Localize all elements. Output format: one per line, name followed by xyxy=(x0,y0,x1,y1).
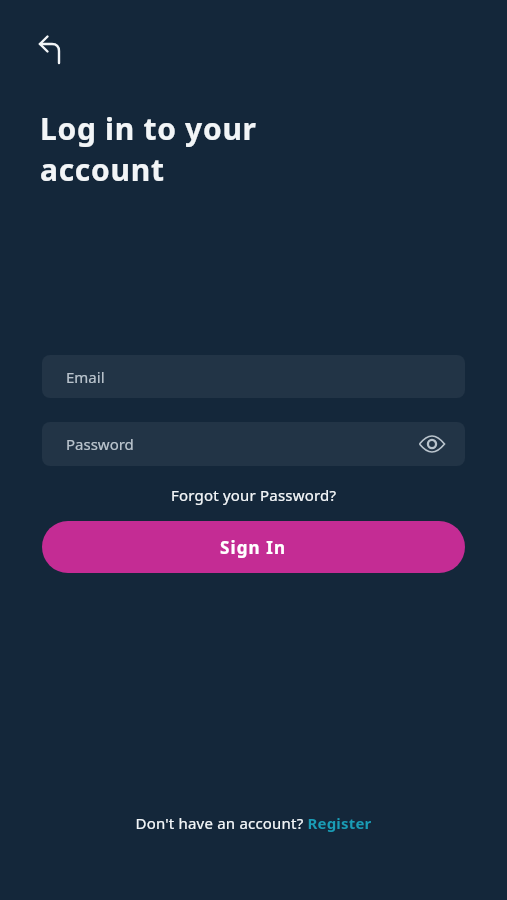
staticText: Password xyxy=(66,434,134,454)
staticText: Email xyxy=(66,367,105,387)
button[interactable]: Email xyxy=(42,355,465,398)
button[interactable]: Forgot your Password? xyxy=(165,483,343,507)
staticText: Forgot your Password? xyxy=(171,485,337,505)
button[interactable]: Sign In xyxy=(42,521,465,573)
staticText: Log in to your account xyxy=(40,108,460,190)
staticText: Don't have an account? Register xyxy=(135,813,372,833)
button[interactable]: Don't have an account? Register xyxy=(129,810,378,836)
button[interactable]: Password xyxy=(42,422,465,466)
button[interactable]: Show password xyxy=(417,429,447,459)
button[interactable]: Back xyxy=(34,30,74,70)
staticText: Sign In xyxy=(220,536,287,559)
